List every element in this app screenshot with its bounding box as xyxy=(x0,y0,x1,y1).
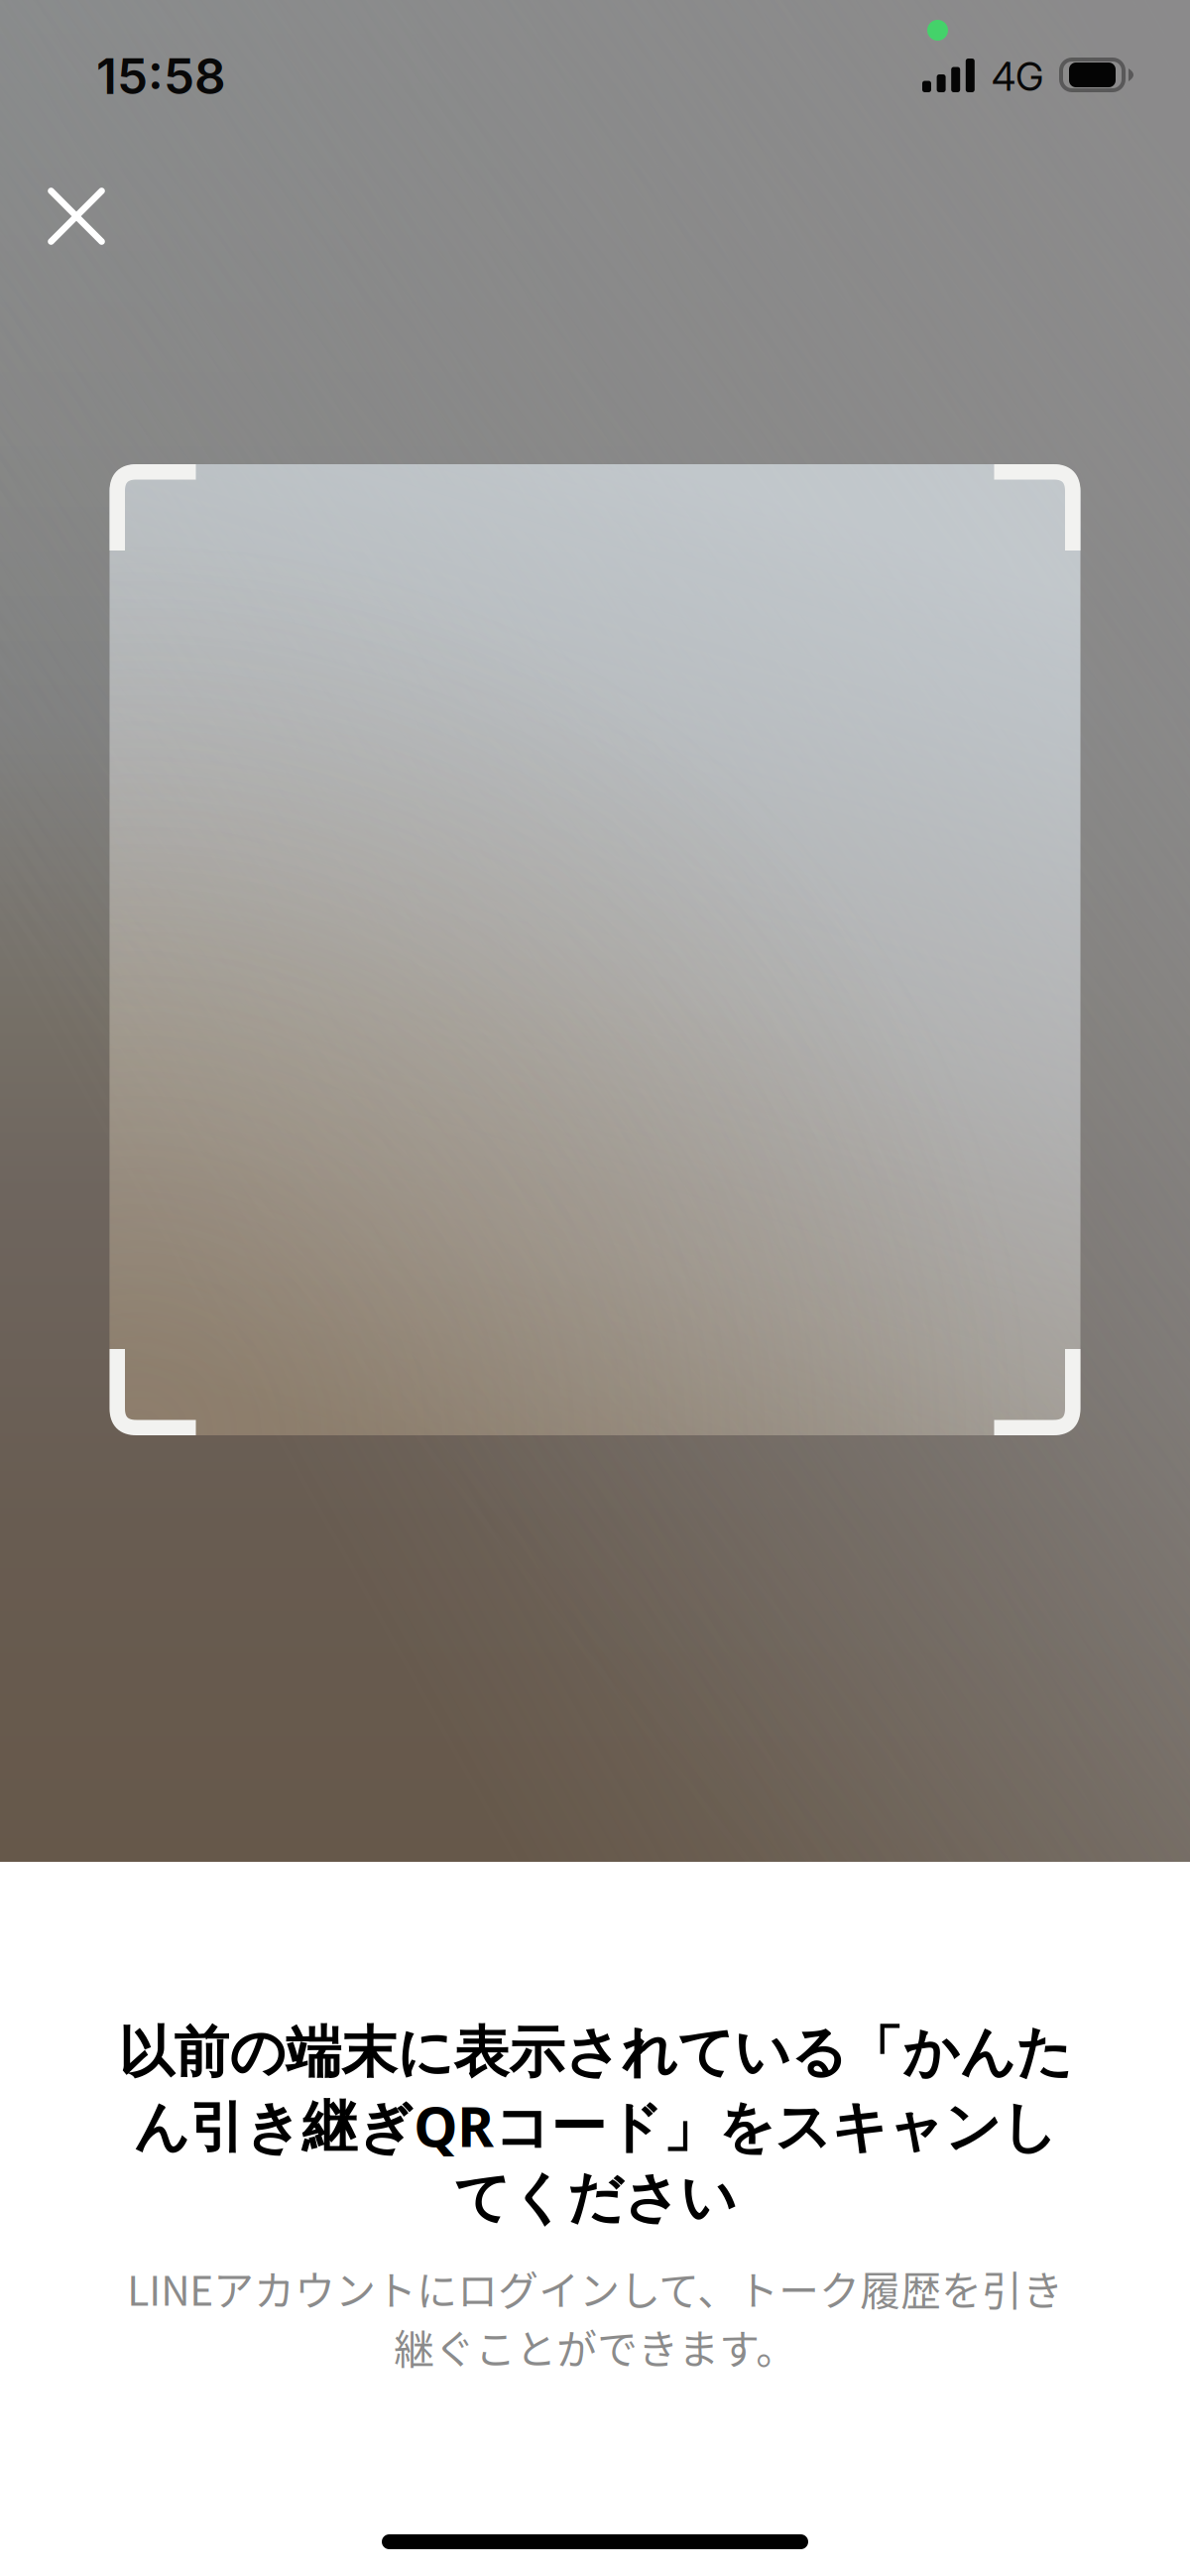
staticText: 以前の端末に表示されている「かんた ん引き継ぎQRコード」をスキャンし てくださ… xyxy=(118,2018,1072,2233)
staticText: LINEアカウントにログインして、トーク履歴を引き 継ぐことができます。 xyxy=(127,2259,1063,2376)
staticText: 4G xyxy=(992,54,1043,100)
staticText: 15:58 xyxy=(96,47,226,106)
button[interactable]: Close xyxy=(13,153,140,280)
